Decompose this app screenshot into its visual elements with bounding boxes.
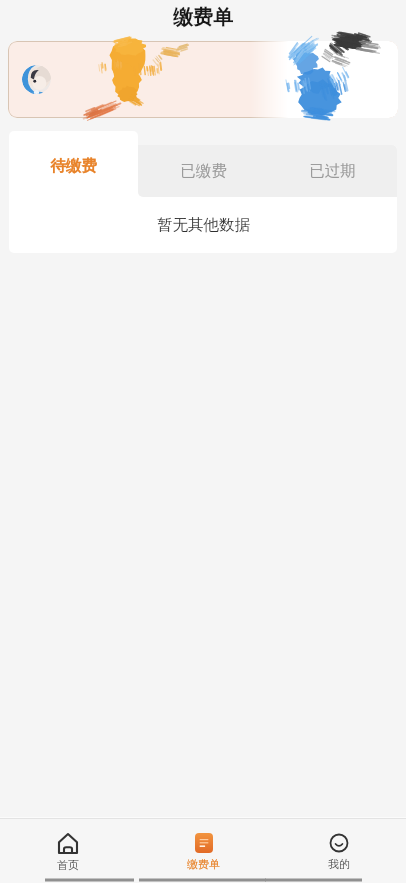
- button[interactable]: 缴费单: [136, 819, 271, 872]
- button[interactable]: 我的: [271, 819, 406, 872]
- staticText: 已缴费: [180, 161, 227, 181]
- staticText: 缴费单: [173, 5, 233, 30]
- staticText: 暂无其他数据: [157, 215, 250, 235]
- staticText: 已过期: [309, 161, 356, 181]
- button[interactable]: 首页: [0, 819, 136, 872]
- button[interactable]: 待缴费: [9, 131, 138, 197]
- staticText: 缴费单: [187, 857, 220, 871]
- staticText: 待缴费: [50, 156, 97, 176]
- button[interactable]: 已过期: [268, 145, 397, 197]
- other: 缴费单: [195, 833, 213, 853]
- staticText: 我的: [328, 857, 350, 871]
- button[interactable]: 已缴费: [139, 145, 268, 197]
- other: 我的: [329, 833, 349, 853]
- other: 首页: [58, 833, 78, 854]
- button[interactable]: [8, 41, 398, 118]
- staticText: 首页: [57, 858, 79, 872]
